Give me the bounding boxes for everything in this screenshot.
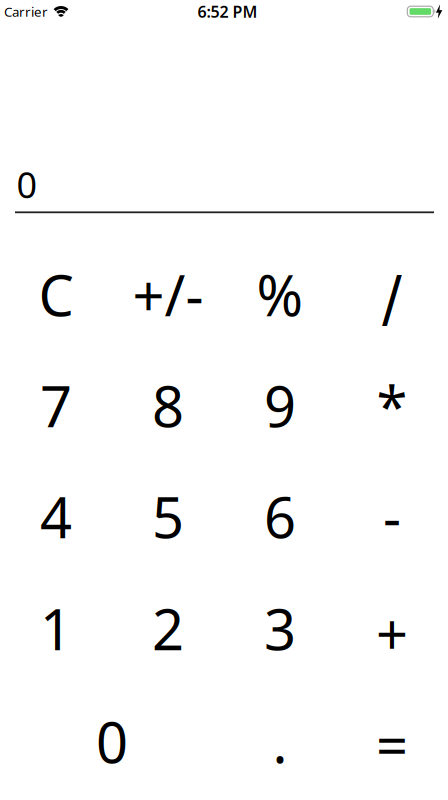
button[interactable]: = xyxy=(336,685,448,798)
staticText: 9 xyxy=(264,368,296,443)
button[interactable]: 0 xyxy=(0,685,224,798)
button[interactable]: 8 xyxy=(112,350,224,461)
staticText: + xyxy=(376,596,408,670)
staticText: C xyxy=(38,257,73,332)
button[interactable]: * xyxy=(336,350,448,461)
staticText: 7 xyxy=(40,368,72,443)
staticText: 1 xyxy=(40,591,72,666)
staticText: 3 xyxy=(264,591,296,666)
button[interactable]: +/- xyxy=(112,239,224,350)
staticText: 4 xyxy=(40,479,72,554)
button[interactable]: C xyxy=(0,239,112,350)
button[interactable]: 9 xyxy=(224,350,336,461)
staticText: 8 xyxy=(152,368,184,443)
staticText: +/- xyxy=(132,257,203,332)
staticText: Carrier xyxy=(4,3,48,20)
staticText: 0 xyxy=(96,704,128,779)
button[interactable]: 1 xyxy=(0,572,112,685)
staticText: 6 xyxy=(264,479,296,554)
staticText: % xyxy=(256,257,303,332)
button[interactable]: 7 xyxy=(0,350,112,461)
staticText: * xyxy=(376,368,407,443)
staticText: 2 xyxy=(152,591,184,666)
staticText: = xyxy=(376,707,408,781)
staticText: 5 xyxy=(152,479,184,554)
staticText: 0 xyxy=(16,160,37,208)
staticText: 6:52 PM xyxy=(197,1,257,22)
button[interactable]: . xyxy=(224,685,336,798)
button[interactable]: - xyxy=(336,461,448,572)
button[interactable]: + xyxy=(336,572,448,685)
button[interactable]: 6 xyxy=(224,461,336,572)
staticText: - xyxy=(383,479,401,554)
button[interactable]: 4 xyxy=(0,461,112,572)
button[interactable]: 5 xyxy=(112,461,224,572)
staticText: / xyxy=(381,261,402,336)
button[interactable]: 3 xyxy=(224,572,336,685)
button[interactable]: % xyxy=(224,239,336,350)
button[interactable]: 2 xyxy=(112,572,224,685)
staticText: . xyxy=(272,704,287,779)
button[interactable]: / xyxy=(336,239,448,350)
